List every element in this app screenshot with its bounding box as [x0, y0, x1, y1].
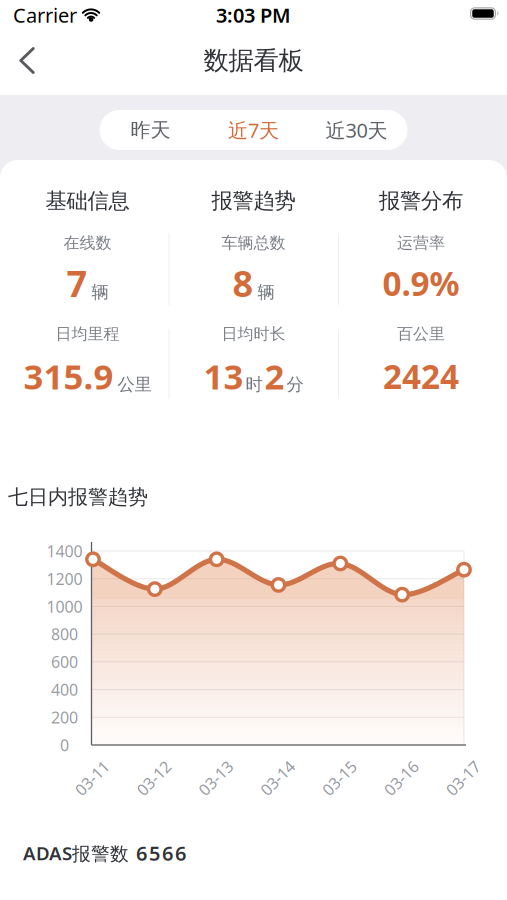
staticText: 时 [245, 374, 262, 395]
staticText: ADAS报警数 [23, 841, 129, 865]
staticText: 0 [60, 734, 69, 756]
staticText: 03-14 [257, 767, 298, 789]
button[interactable]: 昨天 [100, 110, 200, 150]
staticText: 报警趋势 [211, 188, 295, 214]
staticText: 报警分布 [379, 188, 463, 214]
staticText: 200 [51, 707, 78, 728]
staticText: 800 [51, 623, 78, 645]
staticText: 600 [51, 651, 78, 672]
staticText: 近7天 [228, 117, 279, 143]
staticText: 辆 [257, 282, 274, 303]
button[interactable]: 报警趋势 [193, 186, 313, 216]
staticText: 400 [51, 679, 78, 700]
staticText: 2424 [383, 354, 459, 398]
button[interactable]: 近7天 [203, 110, 303, 150]
staticText: 03-11 [71, 767, 112, 789]
staticText: 1000 [46, 596, 82, 617]
staticText: 分 [286, 374, 303, 395]
button[interactable]: 近30天 [306, 110, 406, 150]
staticText: 车辆总数 [221, 233, 285, 253]
staticText: 辆 [91, 282, 108, 303]
staticText: 03-17 [442, 767, 483, 789]
staticText: 日均时长 [221, 324, 285, 344]
staticText: 3:03 PM [216, 2, 291, 28]
staticText: 03-12 [133, 767, 174, 789]
staticText: 7 [66, 259, 87, 307]
staticText: 近30天 [325, 117, 387, 143]
staticText: 1400 [46, 540, 82, 562]
staticText: 8 [232, 259, 253, 307]
staticText: 0.9% [382, 261, 459, 305]
staticText: 七日内报警趋势 [8, 485, 148, 509]
staticText: 13 [203, 353, 243, 399]
staticText: 百公里 [397, 324, 445, 344]
staticText: 2 [264, 353, 284, 399]
staticText: 03-15 [319, 767, 360, 789]
staticText: 在线数 [63, 233, 111, 253]
staticText: 数据看板 [203, 45, 303, 76]
staticText: 日均里程 [55, 324, 119, 344]
staticText: Carrier [13, 2, 77, 28]
staticText: 6566 [136, 840, 186, 866]
staticText: 基础信息 [45, 188, 129, 214]
staticText: 公里 [117, 374, 151, 395]
button[interactable]: 基础信息 [27, 186, 147, 216]
staticText: 1200 [46, 568, 82, 589]
button[interactable]: Back [7, 40, 47, 80]
staticText: 315.9 [23, 353, 113, 399]
staticText: 运营率 [397, 233, 445, 253]
button[interactable]: 报警分布 [361, 186, 481, 216]
staticText: 03-16 [381, 767, 422, 789]
staticText: 昨天 [130, 118, 170, 142]
staticText: 03-13 [195, 767, 236, 789]
